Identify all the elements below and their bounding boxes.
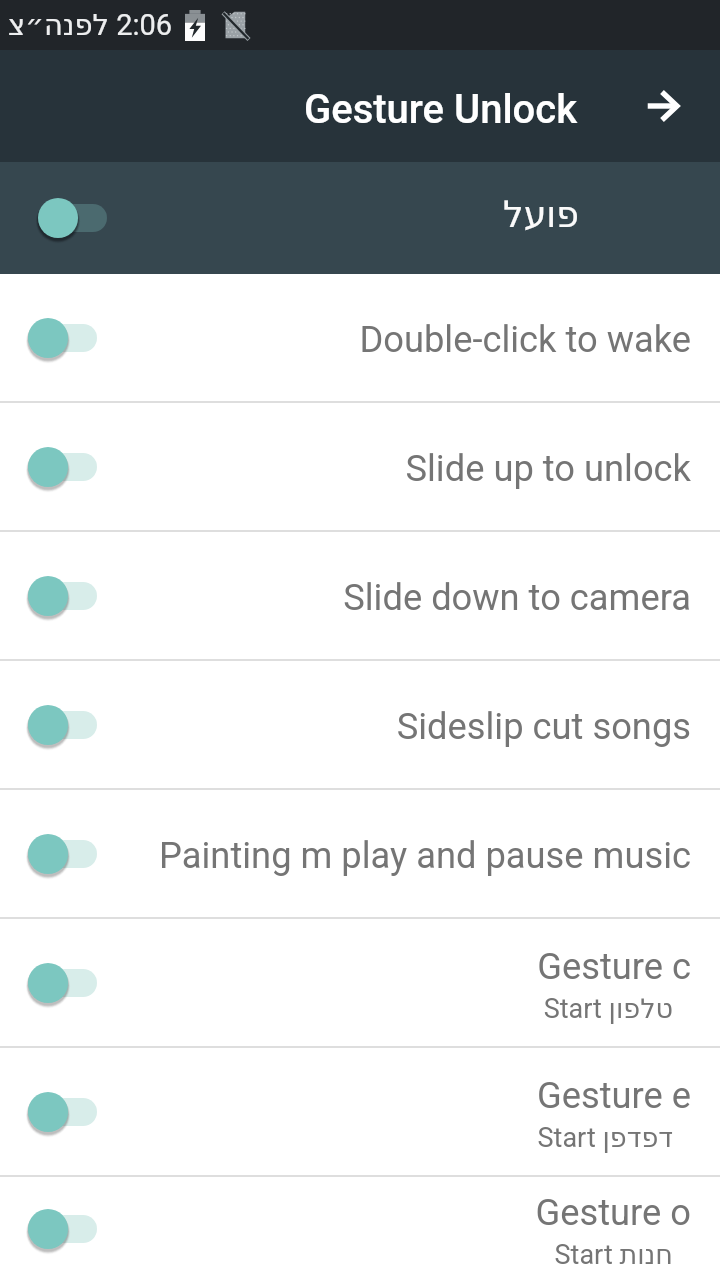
button[interactable]: Toggle Sideslip cut songs — [28, 703, 97, 747]
button[interactable]: Toggle Slide down to camera — [28, 574, 97, 618]
staticText: Double-click to wake — [359, 318, 691, 361]
staticText: Gesture Unlock — [304, 86, 578, 133]
button[interactable]: Toggle Gesture e — [28, 1090, 97, 1134]
button[interactable]: Toggle Gesture e — [0, 1048, 720, 1175]
button[interactable]: Toggle Painting m play and pause music — [28, 832, 97, 876]
staticText: Slide up to unlock — [405, 447, 691, 490]
staticText: Start דפדפן — [537, 1122, 673, 1154]
staticText: Gesture c — [537, 945, 691, 988]
button[interactable]: Toggle Slide up to unlock — [28, 445, 97, 489]
staticText: Sideslip cut songs — [396, 705, 691, 748]
button[interactable]: Toggle Gesture o — [28, 1207, 97, 1251]
button[interactable]: Toggle Slide down to camera — [0, 532, 720, 659]
button[interactable]: Toggle Sideslip cut songs — [0, 661, 720, 788]
button[interactable]: Toggle gesture unlock — [0, 162, 720, 274]
staticText: Gesture o — [535, 1191, 691, 1234]
staticText: Start טלפון — [543, 993, 673, 1025]
button[interactable]: Back — [614, 58, 710, 154]
staticText: ‏2:06 לפנה״צ — [8, 8, 173, 42]
button[interactable]: Toggle Double-click to wake — [28, 316, 97, 360]
staticText: Start חנות — [554, 1239, 673, 1271]
button[interactable]: Toggle Gesture o — [0, 1177, 720, 1280]
staticText: Slide down to camera — [343, 576, 691, 619]
button[interactable]: Toggle Gesture c — [0, 919, 720, 1046]
button[interactable]: Toggle Painting m play and pause music — [0, 790, 720, 917]
staticText: פועל — [503, 193, 579, 235]
staticText: Painting m play and pause music — [159, 834, 691, 877]
button[interactable]: Toggle Double-click to wake — [0, 274, 720, 401]
staticText: Gesture e — [536, 1074, 691, 1117]
button[interactable]: Toggle gesture unlock — [38, 196, 107, 240]
button[interactable]: Toggle Gesture c — [28, 961, 97, 1005]
button[interactable]: Toggle Slide up to unlock — [0, 403, 720, 530]
